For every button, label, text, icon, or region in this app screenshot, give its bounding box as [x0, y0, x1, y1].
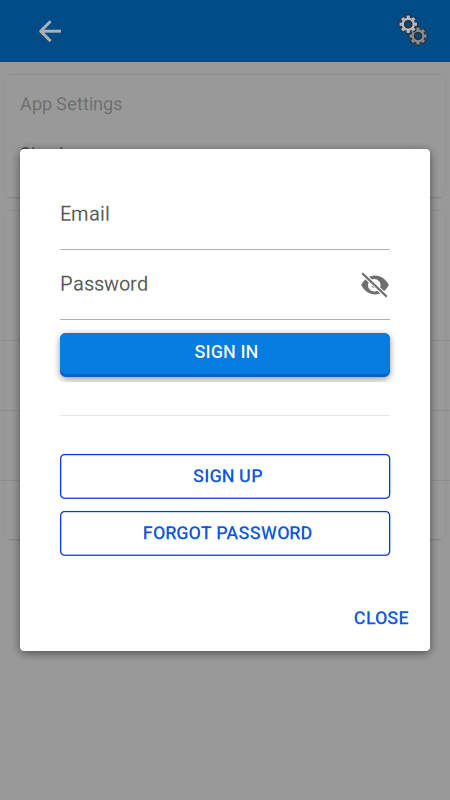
button[interactable]: CLOSE: [318, 600, 408, 636]
button[interactable]: FORGOT PASSWORD: [60, 511, 390, 556]
staticText: FORGOT PASSWORD: [143, 522, 312, 544]
button[interactable]: SIGN UP: [60, 454, 390, 499]
button[interactable]: Password: [60, 264, 390, 320]
staticText: Password: [60, 272, 148, 296]
staticText: Email: [60, 202, 110, 226]
button[interactable]: Settings: [389, 6, 437, 54]
button[interactable]: Back: [27, 7, 75, 55]
staticText: SIGN UP: [193, 465, 262, 487]
button[interactable]: Email: [60, 194, 390, 250]
staticText: App Settings: [20, 93, 122, 115]
button[interactable]: SIGN IN: [60, 333, 390, 374]
staticText: CLOSE: [354, 607, 408, 629]
staticText: Sign in: [20, 143, 73, 165]
staticText: SIGN IN: [194, 341, 259, 362]
